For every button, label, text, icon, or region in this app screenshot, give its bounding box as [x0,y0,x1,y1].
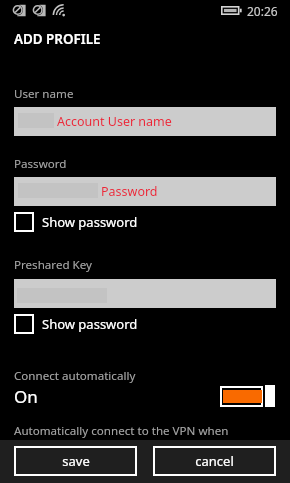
staticText: User name [14,86,74,102]
staticText: Preshared Key [14,257,92,273]
button[interactable]: Show password [0,314,290,334]
staticText: save [62,452,90,470]
button[interactable]: save [14,446,137,476]
button[interactable]: cancel [153,446,276,476]
button[interactable]: Connect automatically toggle [220,385,275,407]
staticText: Show password [42,315,138,333]
staticText: Account User name [57,113,172,130]
button[interactable]: Text field [14,279,276,308]
staticText: Show password [42,213,138,231]
staticText: On [14,385,38,408]
staticText: Password [101,183,158,200]
staticText: Password [14,156,67,172]
staticText: Connect automatically [14,368,136,384]
staticText: ADD PROFILE [14,30,101,48]
staticText: Automatically connect to the VPN when [14,423,229,439]
staticText: 20:26 [247,3,278,19]
button[interactable]: Text field [14,177,276,206]
button[interactable]: Show password [0,212,290,232]
button[interactable]: Text field [14,107,276,136]
staticText: cancel [195,452,234,470]
